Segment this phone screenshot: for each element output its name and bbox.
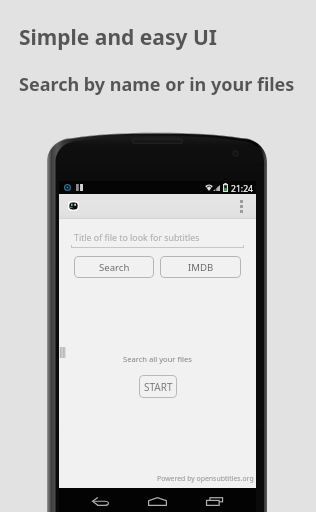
- staticText: Search all your files: [123, 354, 192, 364]
- button[interactable]: Back: [59, 488, 141, 512]
- button[interactable]: IMDB: [160, 256, 241, 278]
- button[interactable]: Recents: [174, 488, 256, 512]
- button[interactable]: More options: [232, 197, 256, 216]
- staticText: IMDB: [188, 261, 214, 274]
- button[interactable]: Home: [141, 488, 174, 512]
- staticText: 21:24: [231, 183, 253, 195]
- staticText: Powered by opensubtitles.org: [157, 474, 254, 483]
- button[interactable]: Search: [74, 256, 154, 278]
- staticText: Title of file to look for subtitles: [74, 232, 200, 244]
- staticText: Simple and easy UI: [19, 23, 217, 52]
- staticText: Search: [99, 261, 130, 274]
- staticText: Search by name or in your files: [19, 72, 295, 97]
- button[interactable]: START: [139, 375, 177, 398]
- staticText: START: [144, 380, 173, 394]
